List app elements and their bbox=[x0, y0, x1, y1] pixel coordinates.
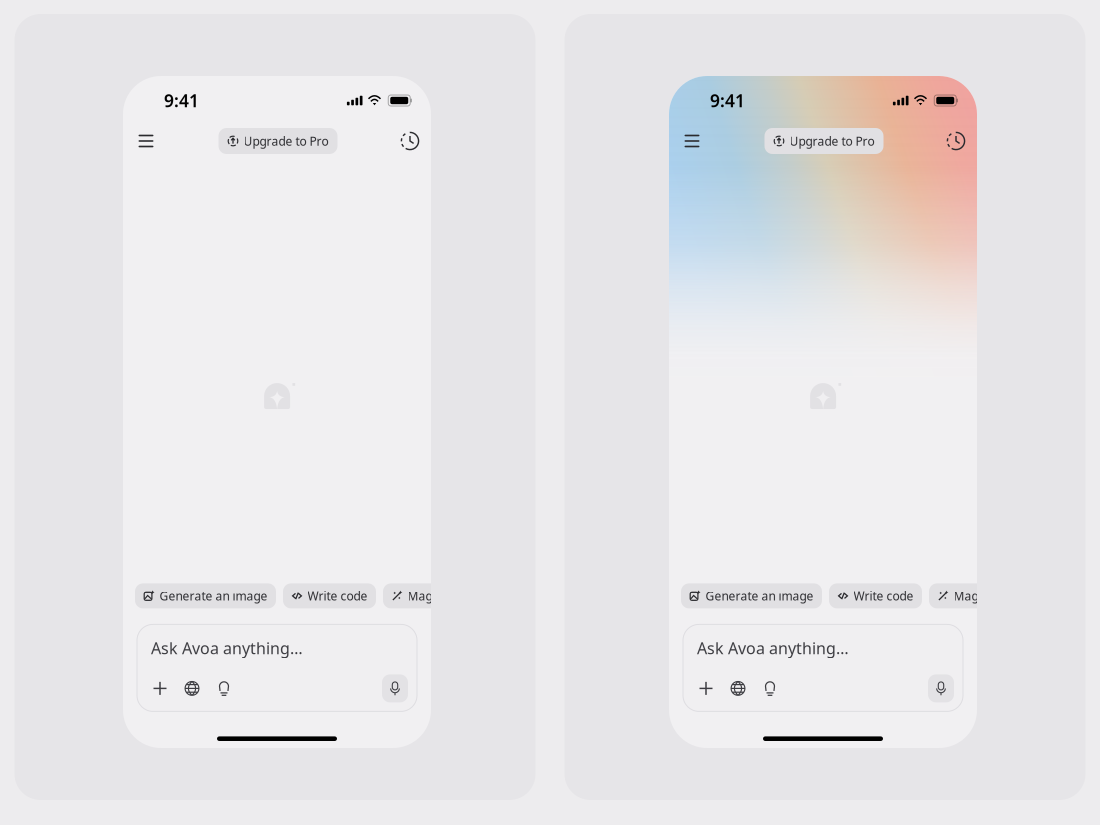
staticText: 9:41 bbox=[710, 89, 745, 112]
staticText: Magic Assist bbox=[407, 588, 477, 604]
button[interactable]: Add attachment bbox=[690, 674, 722, 702]
button[interactable]: Menu bbox=[129, 124, 163, 158]
button[interactable]: History bbox=[393, 124, 427, 158]
staticText: Magic Assist bbox=[953, 588, 1023, 604]
button[interactable]: Add attachment bbox=[144, 674, 176, 702]
button[interactable]: Browse web bbox=[722, 674, 754, 702]
staticText: Upgrade to Pro bbox=[243, 133, 328, 149]
staticText: Ask Avoa anything… bbox=[151, 637, 303, 659]
staticText: Upgrade to Pro bbox=[789, 133, 874, 149]
button[interactable]: Magic Assist bbox=[383, 583, 486, 608]
staticText: Write code bbox=[853, 588, 913, 604]
staticText: Write code bbox=[307, 588, 367, 604]
button[interactable]: Upgrade to Pro bbox=[764, 128, 883, 154]
button[interactable]: Write code bbox=[283, 583, 376, 608]
button[interactable]: Voice input bbox=[382, 674, 408, 702]
staticText: Generate an image bbox=[159, 588, 267, 604]
button[interactable]: Upgrade to Pro bbox=[218, 128, 337, 154]
staticText: Ask Avoa anything… bbox=[697, 637, 849, 659]
button[interactable]: Generate an image bbox=[681, 583, 822, 608]
button[interactable]: Magic Assist bbox=[929, 583, 1032, 608]
button[interactable]: Ideas bbox=[754, 674, 786, 702]
button[interactable]: Write code bbox=[829, 583, 922, 608]
button[interactable]: Menu bbox=[675, 124, 709, 158]
button[interactable]: Ideas bbox=[208, 674, 240, 702]
staticText: 9:41 bbox=[164, 89, 199, 112]
button[interactable]: Browse web bbox=[176, 674, 208, 702]
button[interactable]: Generate an image bbox=[135, 583, 276, 608]
staticText: Generate an image bbox=[705, 588, 813, 604]
button[interactable]: Voice input bbox=[928, 674, 954, 702]
button[interactable]: History bbox=[939, 124, 973, 158]
